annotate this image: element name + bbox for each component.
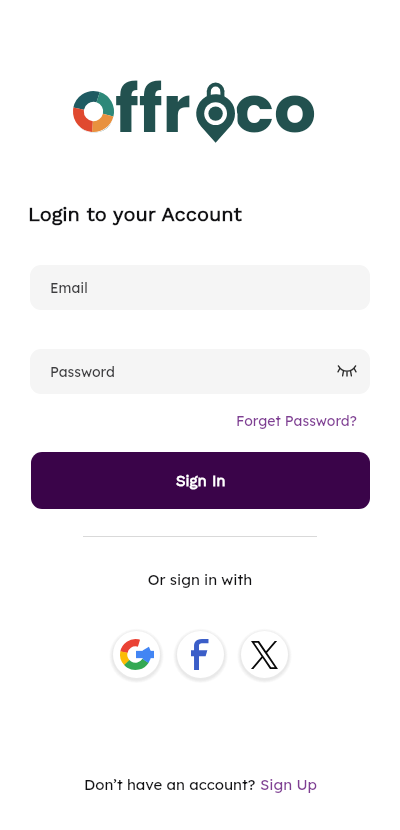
staticText: Or sign in with: [0, 570, 400, 589]
button[interactable]: Email: [30, 265, 370, 310]
staticText: co: [234, 63, 316, 155]
staticText: Don’t have an account?: [84, 775, 260, 794]
button[interactable]: Show password: [332, 356, 364, 388]
button[interactable]: Sign Up: [260, 775, 317, 794]
button[interactable]: Sign In: [31, 452, 370, 509]
staticText: Login to your Account: [28, 202, 242, 225]
button[interactable]: Sign in with X: [241, 631, 288, 678]
button[interactable]: Forget Password?: [236, 410, 357, 432]
staticText: Password: [50, 363, 115, 381]
staticText: offr: [73, 63, 191, 155]
button[interactable]: Sign in with Google: [113, 631, 160, 678]
staticText: Email: [50, 279, 88, 297]
staticText: Sign In: [176, 472, 226, 490]
button[interactable]: Password: [30, 349, 370, 394]
button[interactable]: Sign in with Facebook: [177, 631, 224, 678]
